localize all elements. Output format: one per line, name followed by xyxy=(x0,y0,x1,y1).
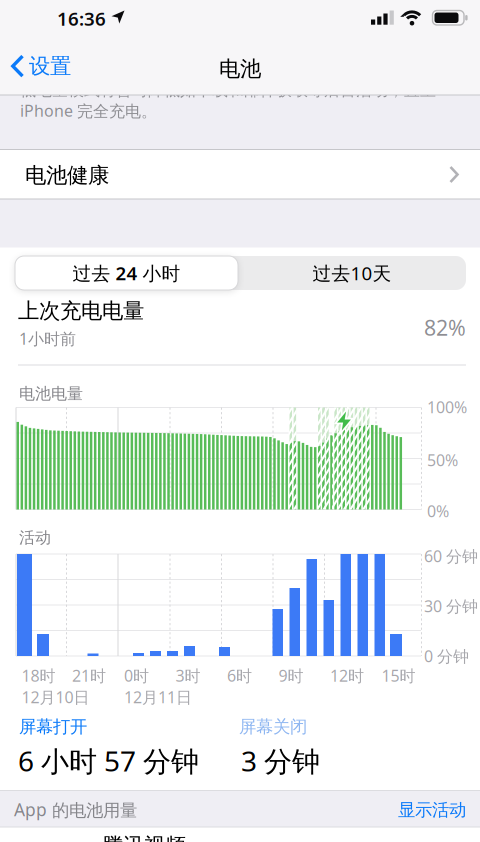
staticText: 过去10天 xyxy=(312,261,391,285)
staticText: 15时 xyxy=(381,665,415,686)
staticText: 上次充电电量 xyxy=(18,298,144,324)
staticText: 过去 24 小时 xyxy=(72,261,180,285)
staticText: 21时 xyxy=(72,665,106,686)
staticText: iPhone 完全充电。 xyxy=(20,100,157,121)
staticText: 0 分钟 xyxy=(424,645,469,667)
staticText: 屏幕关闭 xyxy=(239,716,307,737)
button[interactable]: 过去 24 小时 xyxy=(15,256,238,290)
staticText: 12时 xyxy=(330,665,364,686)
button[interactable]: 显示活动 xyxy=(0,0,480,21)
staticText: 100% xyxy=(427,396,467,418)
staticText: 16:36 xyxy=(57,6,106,31)
staticText: App 的电池用量 xyxy=(14,798,137,821)
staticText: 60 分钟 xyxy=(424,545,478,567)
staticText: 低电量模式将暂时降低如下载和邮件获取等后台活动，直至 xyxy=(20,80,436,100)
staticText: 12月10日 xyxy=(21,686,89,708)
staticText: 电池 xyxy=(219,56,261,82)
staticText: 0时 xyxy=(124,665,149,686)
staticText: 6时 xyxy=(227,665,252,686)
staticText: 0% xyxy=(427,500,449,522)
staticText: 18时 xyxy=(21,665,55,686)
staticText: 12月11日 xyxy=(124,686,192,708)
staticText: 活动 xyxy=(19,528,51,547)
button[interactable]: 过去10天 xyxy=(238,256,466,290)
button[interactable]: 设置 xyxy=(11,53,71,79)
staticText: 6 小时 57 分钟 xyxy=(18,742,199,779)
staticText: 电池电量 xyxy=(19,384,83,403)
staticText: 9时 xyxy=(278,665,303,686)
staticText: 82% xyxy=(424,313,466,342)
staticText: 腾讯视频 xyxy=(102,833,186,842)
staticText: 设置 xyxy=(29,53,71,79)
staticText: 3 分钟 xyxy=(241,742,320,779)
staticText: 屏幕打开 xyxy=(19,716,87,737)
staticText: 30 分钟 xyxy=(424,595,478,617)
staticText: 显示活动 xyxy=(398,799,466,821)
staticText: 50% xyxy=(427,449,458,471)
staticText: 电池健康 xyxy=(25,162,109,189)
button[interactable]: 电池健康 xyxy=(0,150,480,199)
staticText: 3时 xyxy=(175,665,200,686)
staticText: 1小时前 xyxy=(19,328,76,349)
